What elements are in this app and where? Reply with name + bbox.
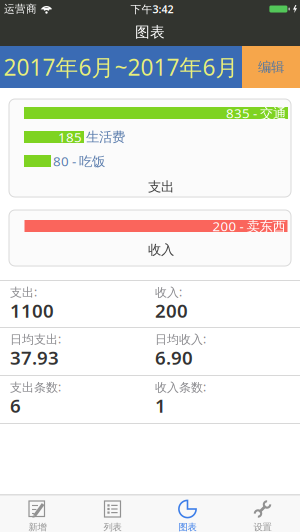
staticText: 200 xyxy=(155,298,188,323)
staticText: 日均支出: xyxy=(10,331,61,347)
button[interactable]: 图表 xyxy=(150,495,225,532)
staticText: 1100 xyxy=(10,298,54,323)
staticText: 日均收入: xyxy=(155,331,206,347)
staticText: 1 xyxy=(155,393,166,418)
staticText: 6.90 xyxy=(155,345,193,370)
staticText: 生活费 xyxy=(86,129,125,145)
staticText: 835 - 交通 xyxy=(226,104,286,122)
staticText: 支出: xyxy=(10,284,37,300)
staticText: 设置 xyxy=(253,521,271,532)
staticText: 支出条数: xyxy=(10,379,61,395)
staticText: 200 - 卖东西 xyxy=(212,217,285,235)
staticText: 185 xyxy=(58,128,82,146)
staticText: 收入: xyxy=(155,284,182,300)
staticText: 37.93 xyxy=(10,345,59,370)
staticText: 图表 xyxy=(178,521,196,532)
staticText: 下午3:42 xyxy=(130,2,173,16)
staticText: 新增 xyxy=(28,521,46,532)
staticText: 80 - 吃饭 xyxy=(53,152,105,170)
staticText: 6 xyxy=(10,393,21,418)
staticText: 收入条数: xyxy=(155,379,206,395)
staticText: 图表 xyxy=(135,23,165,41)
staticText: 运营商 xyxy=(4,2,37,15)
button[interactable]: 编辑 xyxy=(242,46,300,88)
staticText: 列表 xyxy=(103,521,121,532)
button[interactable]: 列表 xyxy=(75,495,150,532)
button[interactable]: 新增 xyxy=(0,495,75,532)
staticText: 收入 xyxy=(148,242,174,258)
staticText: 2017年6月~2017年6月 xyxy=(3,52,238,82)
button[interactable]: 设置 xyxy=(225,495,300,532)
staticText: 支出 xyxy=(148,179,174,195)
staticText: 编辑 xyxy=(258,59,284,75)
